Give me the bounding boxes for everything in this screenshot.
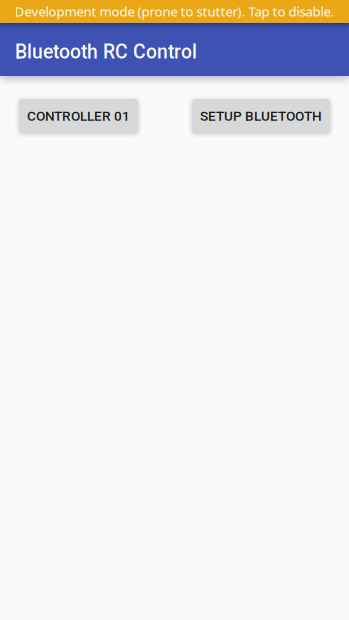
staticText: Bluetooth RC Control [15,41,197,63]
staticText: Development mode (prone to stutter). Tap… [14,2,334,20]
staticText: CONTROLLER 01 [27,108,130,124]
button[interactable]: SETUP BLUETOOTH [192,99,330,133]
button[interactable]: CONTROLLER 01 [19,99,138,133]
button[interactable]: Development mode (prone to stutter). Tap… [0,0,349,23]
staticText: SETUP BLUETOOTH [200,108,322,124]
